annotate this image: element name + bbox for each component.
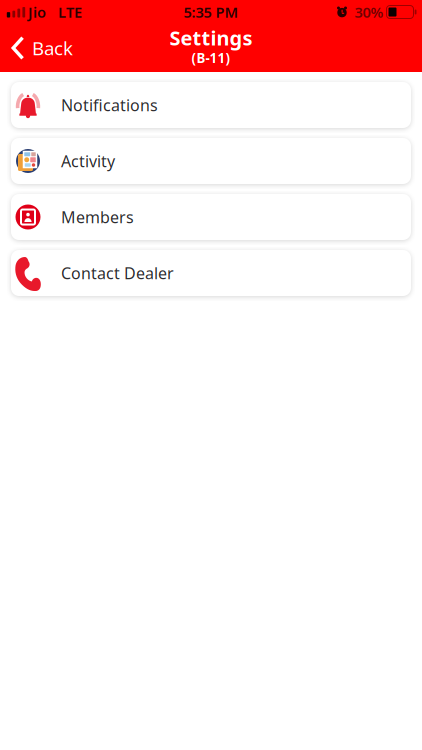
staticText: Members xyxy=(61,206,134,228)
staticText: 30% xyxy=(354,2,383,22)
button[interactable]: Members xyxy=(11,194,411,240)
staticText: Jio xyxy=(28,2,46,22)
button[interactable]: Contact Dealer xyxy=(11,250,411,296)
button[interactable]: Back xyxy=(0,29,83,67)
staticText: Back xyxy=(32,36,73,60)
staticText: (B-11) xyxy=(191,49,230,67)
staticText: Contact Dealer xyxy=(61,262,174,284)
staticText: Settings xyxy=(169,24,252,51)
button[interactable]: Notifications xyxy=(11,82,411,128)
staticText: Notifications xyxy=(61,94,158,116)
staticText: Activity xyxy=(61,150,115,172)
staticText: LTE xyxy=(58,2,82,22)
staticText: 5:35 PM xyxy=(183,2,238,22)
button[interactable]: Activity xyxy=(11,138,411,184)
